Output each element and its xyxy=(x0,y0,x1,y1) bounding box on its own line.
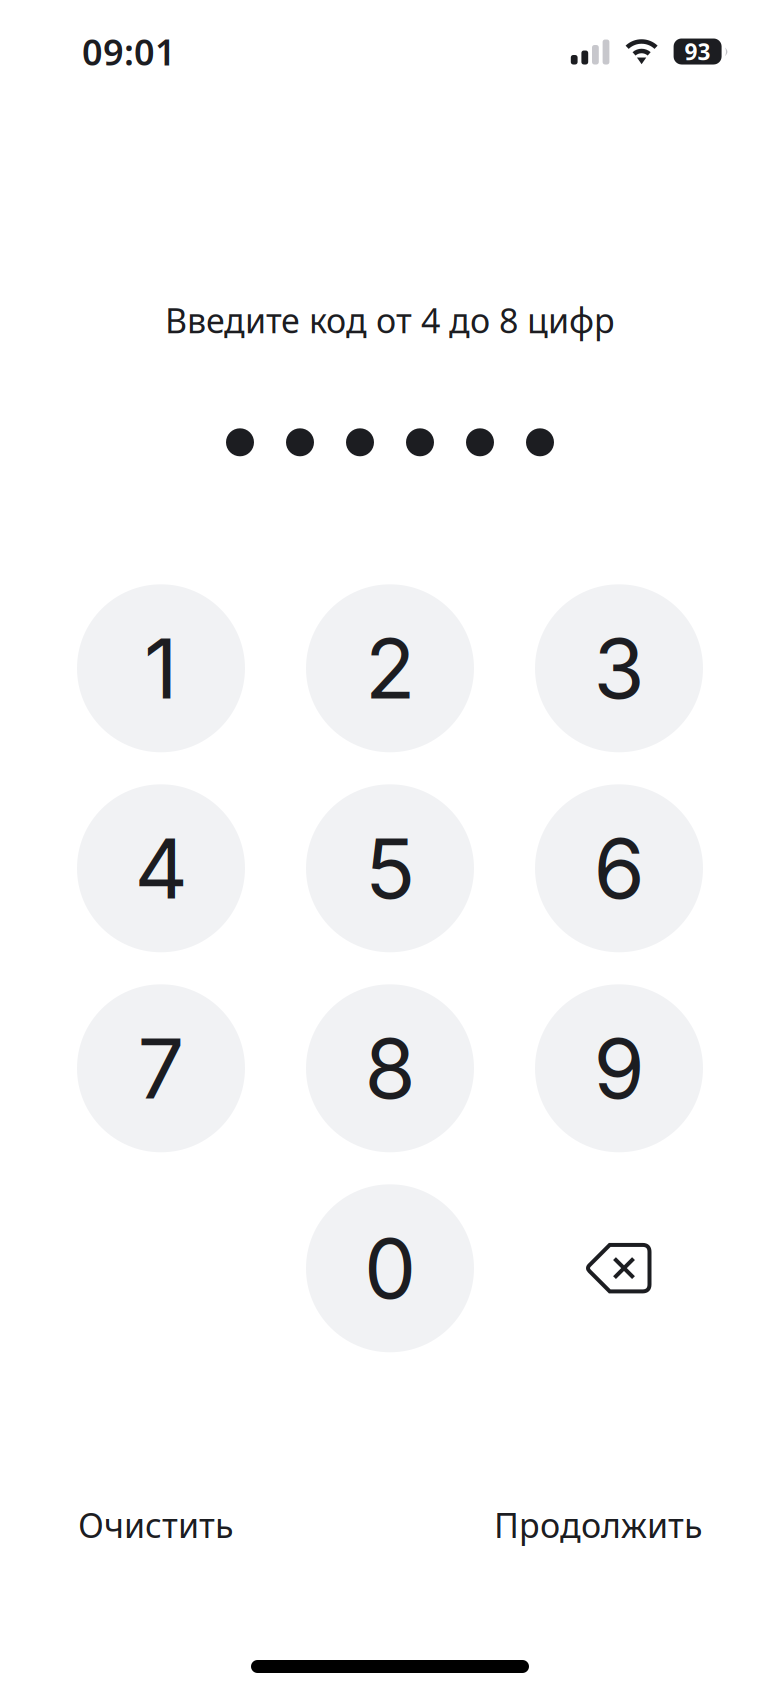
button[interactable]: Очистить xyxy=(20,1484,258,1566)
staticText: Очистить xyxy=(78,1502,234,1548)
button[interactable]: 8 xyxy=(306,984,474,1152)
button[interactable]: 7 xyxy=(77,984,245,1152)
button[interactable]: 6 xyxy=(535,784,703,952)
staticText: 1 xyxy=(144,618,178,718)
button[interactable]: 9 xyxy=(535,984,703,1152)
staticText: 9 xyxy=(593,1018,644,1118)
staticText: 6 xyxy=(593,818,644,918)
staticText: Введите код от 4 до 8 цифр xyxy=(165,297,615,343)
staticText: 93 xyxy=(685,36,711,67)
button[interactable]: Удалить xyxy=(535,1184,703,1352)
button[interactable]: 0 xyxy=(306,1184,474,1352)
staticText: 5 xyxy=(365,818,415,918)
button[interactable]: 5 xyxy=(306,784,474,952)
staticText: 4 xyxy=(134,818,187,918)
button[interactable]: 3 xyxy=(535,584,703,752)
staticText: 0 xyxy=(364,1218,416,1318)
button[interactable]: 4 xyxy=(77,784,245,952)
staticText: 7 xyxy=(137,1018,184,1118)
staticText: 8 xyxy=(364,1018,415,1118)
staticText: 09:01 xyxy=(82,27,176,76)
staticText: Продолжить xyxy=(494,1502,703,1548)
button[interactable]: Продолжить xyxy=(470,1484,760,1566)
staticText: 3 xyxy=(593,618,644,718)
button[interactable]: 1 xyxy=(77,584,245,752)
staticText: 2 xyxy=(365,618,415,718)
button[interactable]: 2 xyxy=(306,584,474,752)
